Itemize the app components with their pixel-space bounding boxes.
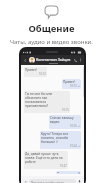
staticText: 10:24 (70, 144, 77, 148)
button[interactable]: Сейчас запишу видео (49, 115, 81, 129)
staticText: Сейчас запишу видео (50, 116, 80, 124)
button[interactable]: Attach (23, 179, 28, 183)
staticText: Привет! (63, 80, 76, 84)
staticText: Ты не мог бы мне объяснить как пользоват… (25, 92, 69, 108)
button[interactable]: Да, давай лучше чуть позже. Ещё есть дел… (24, 151, 68, 169)
button[interactable]: Record voice message (77, 179, 82, 183)
button[interactable]: Привет! (62, 79, 81, 89)
staticText: Договорились! (57, 172, 80, 173)
staticText: Круто! Теперь все понятно, спасибо больш… (41, 132, 80, 144)
button[interactable]: Введите сообщение (29, 179, 76, 183)
button[interactable]: Привет! (24, 67, 47, 77)
button[interactable]: Ты не мог бы мне объяснить как пользоват… (24, 91, 70, 113)
staticText: Привет! (25, 68, 38, 72)
button[interactable]: Круто! Теперь все понятно, спасибо больш… (40, 131, 81, 149)
staticText: Да, давай лучше чуть позже. Ещё есть дел… (25, 152, 67, 164)
button[interactable]: Call (73, 58, 78, 63)
button[interactable]: More options (78, 58, 82, 62)
staticText: Общение (28, 22, 75, 35)
staticText: 10:16 (70, 124, 77, 128)
staticText: 10:13 (70, 84, 77, 88)
staticText: Чаты, аудио и видео звонки. (10, 38, 93, 46)
staticText: 10:12 (39, 72, 46, 76)
staticText: 10:27 (60, 164, 67, 168)
button[interactable]: Contact avatar (29, 57, 35, 63)
staticText: 10:15 (62, 108, 69, 112)
staticText: Введите сообщение (31, 180, 65, 183)
staticText: Константин Зайцев (36, 57, 71, 62)
button[interactable]: Договорились! (56, 171, 81, 174)
button[interactable]: Back (23, 58, 28, 63)
